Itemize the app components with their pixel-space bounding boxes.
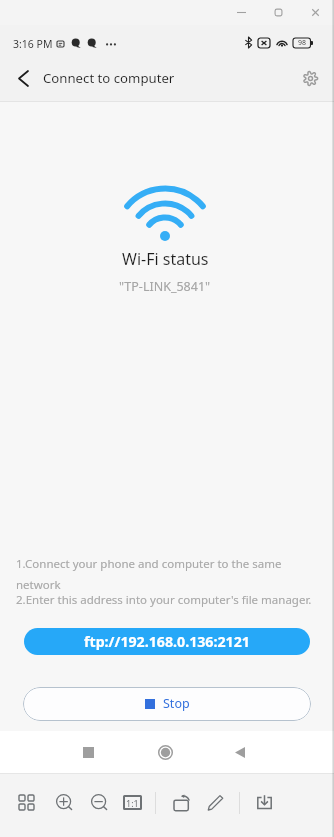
button[interactable]: Zoom in <box>50 788 78 816</box>
staticText: 1:1 <box>126 797 139 809</box>
button[interactable]: Recent apps <box>70 734 106 770</box>
button[interactable]: Settings <box>287 56 334 101</box>
staticText: 2.Enter this address into your computer'… <box>16 592 312 608</box>
staticText: Stop <box>163 695 190 712</box>
button[interactable]: Back <box>0 56 43 101</box>
staticText: 3:16 PM <box>13 37 53 51</box>
staticText: Wi-Fi status <box>122 248 209 270</box>
staticText: 1.Connect your phone and computer to the… <box>16 556 292 592</box>
button[interactable]: Edit <box>201 788 229 816</box>
button[interactable]: ftp://192.168.0.136:2121 <box>24 628 310 655</box>
button[interactable]: Close <box>297 0 334 25</box>
button[interactable]: Home <box>147 734 183 770</box>
button[interactable]: Grid view <box>12 788 40 816</box>
button[interactable]: Minimize <box>223 0 260 25</box>
button[interactable]: Save <box>250 788 278 816</box>
button[interactable]: Stop <box>23 687 311 721</box>
staticText: Connect to computer <box>43 69 175 87</box>
staticText: ftp://192.168.0.136:2121 <box>84 632 250 651</box>
staticText: 98 <box>298 38 307 48</box>
staticText: "TP-LINK_5841" <box>119 278 211 295</box>
button[interactable]: Back <box>222 734 258 770</box>
button[interactable]: Zoom out <box>85 788 113 816</box>
button[interactable]: Actual size <box>118 788 146 816</box>
button[interactable]: Rotate <box>167 788 195 816</box>
button[interactable]: Maximize <box>260 0 297 25</box>
